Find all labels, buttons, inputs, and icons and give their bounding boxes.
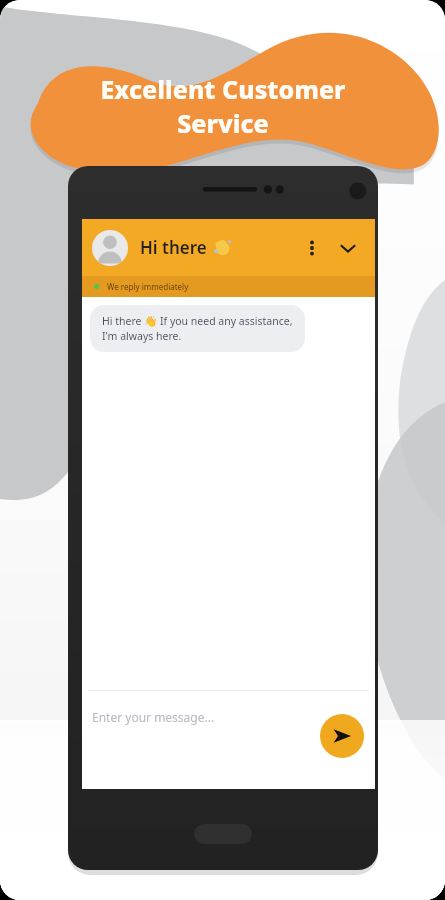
staticText: Enter your message... <box>92 709 215 725</box>
button[interactable]: Send <box>320 714 364 758</box>
button[interactable]: More options <box>297 233 327 263</box>
button[interactable]: Hi there 👋 If you need any assistance, I… <box>90 305 305 352</box>
staticText: Service <box>177 106 269 140</box>
staticText: Excellent Customer <box>100 72 346 106</box>
button[interactable]: Minimize chat <box>331 231 365 265</box>
staticText: Hi there 👋 If you need any assistance, I… <box>102 314 293 343</box>
button[interactable]: Home <box>194 824 252 844</box>
staticText: Hi there <box>140 236 207 259</box>
button[interactable]: Hi there <box>82 219 375 276</box>
staticText: We reply immediately <box>107 281 189 292</box>
